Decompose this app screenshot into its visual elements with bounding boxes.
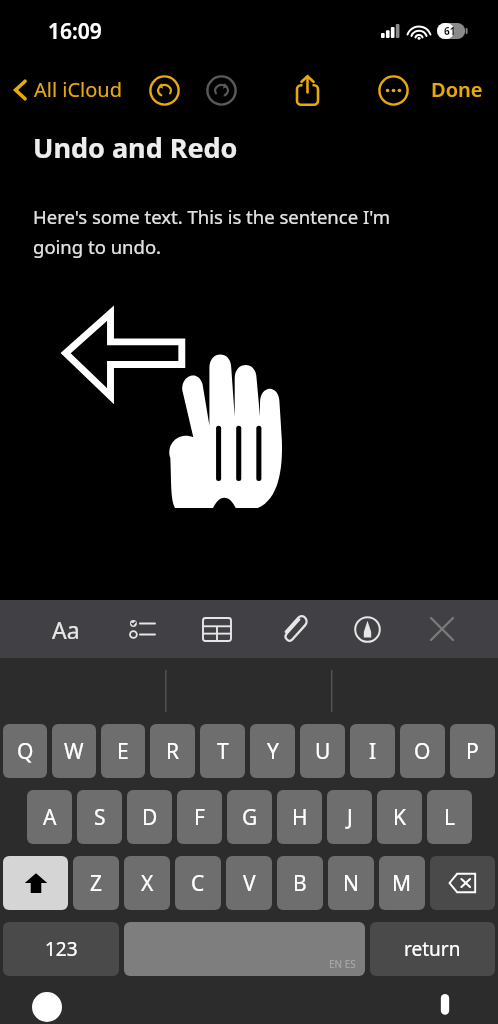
button[interactable]: D	[127, 790, 172, 844]
staticText: T	[217, 737, 229, 766]
staticText: X	[141, 869, 154, 898]
button[interactable]: 123	[3, 922, 119, 976]
button[interactable]: F	[177, 790, 222, 844]
button[interactable]: Done	[426, 70, 488, 109]
staticText: 16:09	[48, 17, 102, 46]
staticText: W	[64, 737, 84, 766]
staticText: H	[292, 803, 308, 832]
button[interactable]: M	[379, 856, 425, 910]
button[interactable]: P	[450, 724, 495, 778]
staticText: return	[404, 936, 461, 962]
button[interactable]: W	[52, 724, 96, 778]
button[interactable]: S	[77, 790, 122, 844]
button[interactable]: R	[150, 724, 195, 778]
staticText: Y	[267, 737, 279, 766]
staticText: D	[142, 803, 158, 832]
button[interactable]: Emoji	[30, 990, 64, 1024]
staticText: G	[242, 803, 258, 832]
staticText: B	[293, 869, 307, 898]
staticText: Aa	[52, 614, 80, 645]
staticText: S	[94, 803, 106, 832]
button[interactable]: T	[200, 724, 245, 778]
staticText: R	[166, 737, 180, 766]
staticText: P	[466, 737, 479, 766]
button[interactable]: V	[226, 856, 272, 910]
button[interactable]: U	[300, 724, 345, 778]
staticText: C	[191, 869, 205, 898]
button[interactable]: Share	[288, 71, 326, 109]
button[interactable]: Close keyboard	[420, 607, 464, 651]
staticText: 123	[45, 936, 78, 962]
staticText: K	[393, 803, 406, 832]
staticText: J	[347, 803, 353, 832]
button[interactable]: Checklist	[120, 607, 164, 651]
staticText: A	[43, 803, 57, 832]
button[interactable]: H	[277, 790, 322, 844]
button[interactable]: Redo	[202, 71, 240, 109]
button[interactable]: I	[350, 724, 395, 778]
button[interactable]: Space	[124, 922, 365, 976]
button[interactable]: Table	[195, 607, 239, 651]
staticText: V	[243, 869, 256, 898]
button[interactable]: J	[327, 790, 372, 844]
button[interactable]: Dictation	[428, 990, 462, 1024]
staticText: Undo and Redo	[33, 129, 238, 166]
button[interactable]: L	[427, 790, 472, 844]
staticText: E	[117, 737, 129, 766]
button[interactable]: B	[277, 856, 323, 910]
button[interactable]: Shift	[3, 856, 68, 910]
button[interactable]: Markup	[345, 607, 389, 651]
button[interactable]: Backspace	[430, 856, 495, 910]
button[interactable]: E	[101, 724, 145, 778]
staticText: M	[392, 869, 412, 898]
button[interactable]: C	[175, 856, 221, 910]
button[interactable]: Z	[73, 856, 119, 910]
button[interactable]: Y	[250, 724, 295, 778]
button[interactable]: O	[400, 724, 445, 778]
button[interactable]: G	[227, 790, 272, 844]
button[interactable]: A	[27, 790, 72, 844]
button[interactable]: All iCloud	[10, 70, 127, 109]
button[interactable]: More	[374, 71, 412, 109]
staticText: U	[315, 737, 331, 766]
button[interactable]: Attach	[270, 607, 314, 651]
button[interactable]: Undo	[145, 71, 183, 109]
staticText: L	[444, 803, 456, 832]
staticText: EN ES	[329, 957, 356, 971]
staticText: Z	[90, 869, 103, 898]
staticText: Here's some text. This is the sentence I…	[33, 204, 391, 260]
button[interactable]: return	[370, 922, 495, 976]
staticText: Done	[431, 76, 483, 103]
button[interactable]: K	[377, 790, 422, 844]
button[interactable]: N	[328, 856, 374, 910]
button[interactable]: X	[124, 856, 170, 910]
staticText: N	[343, 869, 359, 898]
button[interactable]: Format	[44, 607, 88, 651]
staticText: All iCloud	[34, 76, 123, 103]
staticText: F	[194, 803, 205, 832]
button[interactable]: Q	[3, 724, 47, 778]
staticText: I	[369, 737, 377, 766]
staticText: O	[414, 737, 431, 766]
staticText: Q	[17, 737, 34, 766]
staticText: 61	[444, 24, 456, 38]
